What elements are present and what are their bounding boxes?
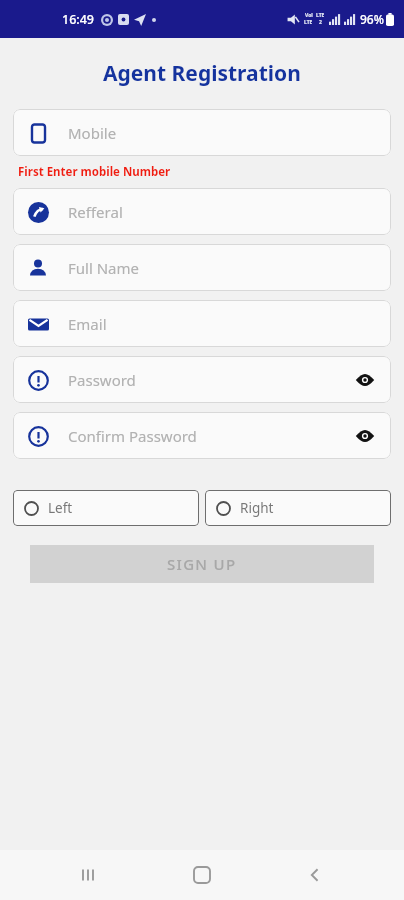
button[interactable]: Left (13, 490, 199, 526)
staticText: Password (68, 370, 352, 390)
staticText: 16:49 (62, 11, 95, 28)
button[interactable]: Mobile (13, 109, 391, 156)
staticText: Full Name (68, 258, 378, 278)
staticText: SIGN UP (167, 554, 237, 574)
staticText: Confirm Password (68, 426, 352, 446)
staticText: Email (68, 314, 378, 334)
button[interactable]: Toggle password visibility (352, 423, 378, 449)
button[interactable]: Confirm Password (13, 412, 391, 459)
staticText: First Enter mobile Number (18, 164, 171, 180)
button[interactable]: Right (205, 490, 391, 526)
staticText: Refferal (68, 202, 378, 222)
staticText: Left (48, 499, 73, 517)
button[interactable]: Password (13, 356, 391, 403)
staticText: Right (240, 499, 274, 517)
staticText: LTE (316, 12, 325, 19)
staticText: LTE (304, 19, 313, 26)
button[interactable]: Toggle password visibility (352, 367, 378, 393)
button[interactable]: Home (178, 851, 226, 899)
staticText: Vol (305, 12, 313, 19)
button[interactable]: Recent apps (65, 851, 113, 899)
button[interactable]: Back (291, 851, 339, 899)
staticText: Agent Registration (103, 59, 301, 88)
button[interactable]: SIGN UP (30, 545, 374, 583)
button[interactable]: Email (13, 300, 391, 347)
button[interactable]: Full Name (13, 244, 391, 291)
staticText: Mobile (68, 123, 378, 143)
staticText: 96% (360, 11, 384, 27)
button[interactable]: Refferal (13, 188, 391, 235)
staticText: 2 (319, 19, 322, 26)
